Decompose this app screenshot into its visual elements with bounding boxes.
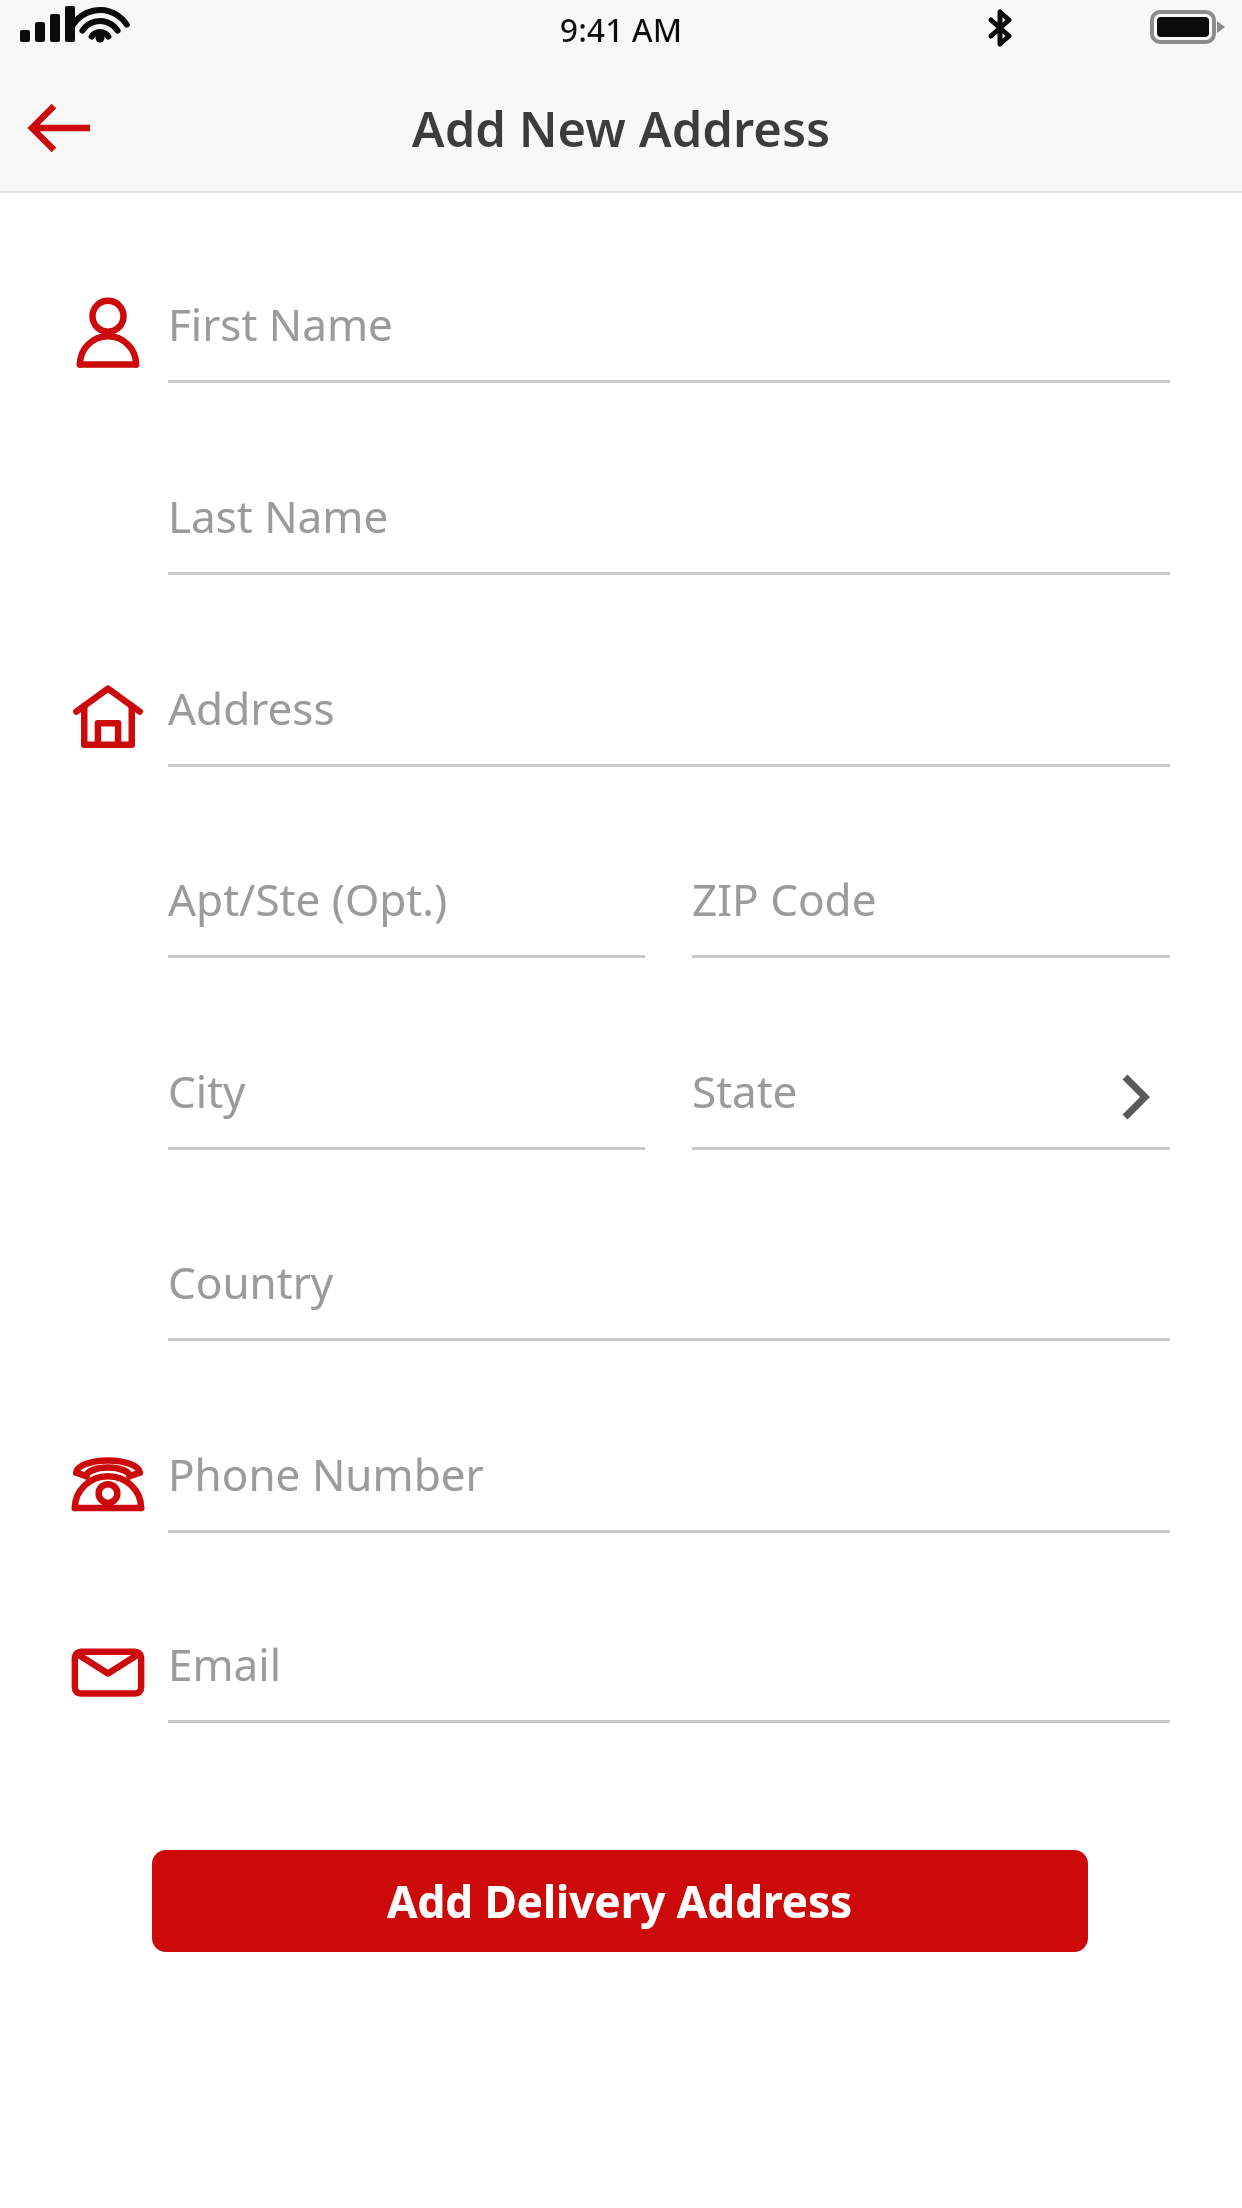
staticText: Country [168,1252,334,1312]
button[interactable]: PERSON [0,270,1242,382]
button[interactable]: MAIL [0,1610,1242,1722]
staticText: 9:41 AM [0,8,1242,52]
staticText: Add Delivery Address [387,1871,853,1931]
button[interactable]: Country [0,1228,1242,1340]
button[interactable]: PHONE [0,1420,1242,1532]
staticText: Email [168,1634,281,1694]
staticText: ZIP Code [692,869,877,929]
button[interactable]: Add Delivery Address [152,1850,1088,1952]
staticText: State [692,1061,798,1121]
other: PERSON [72,296,144,368]
button[interactable]: HOME [0,654,1242,766]
other: MAIL [72,1636,144,1708]
button[interactable]: Last Name [0,462,1242,574]
button[interactable]: ZIP Code [692,845,1170,957]
other: PHONE [72,1446,144,1518]
button[interactable]: Apt/Ste (Opt.) [168,845,645,957]
staticText: First Name [168,294,393,354]
other: Select state [1112,1075,1156,1119]
staticText: Address [168,678,335,738]
staticText: Last Name [168,486,389,546]
staticText: Add New Address [0,95,1242,162]
staticText: Apt/Ste (Opt.) [168,869,448,929]
button[interactable]: State [692,1037,1170,1149]
button[interactable]: City [168,1037,645,1149]
button[interactable]: Back [8,73,118,183]
staticText: City [168,1061,246,1121]
other: HOME [72,680,144,752]
staticText: Phone Number [168,1444,484,1504]
